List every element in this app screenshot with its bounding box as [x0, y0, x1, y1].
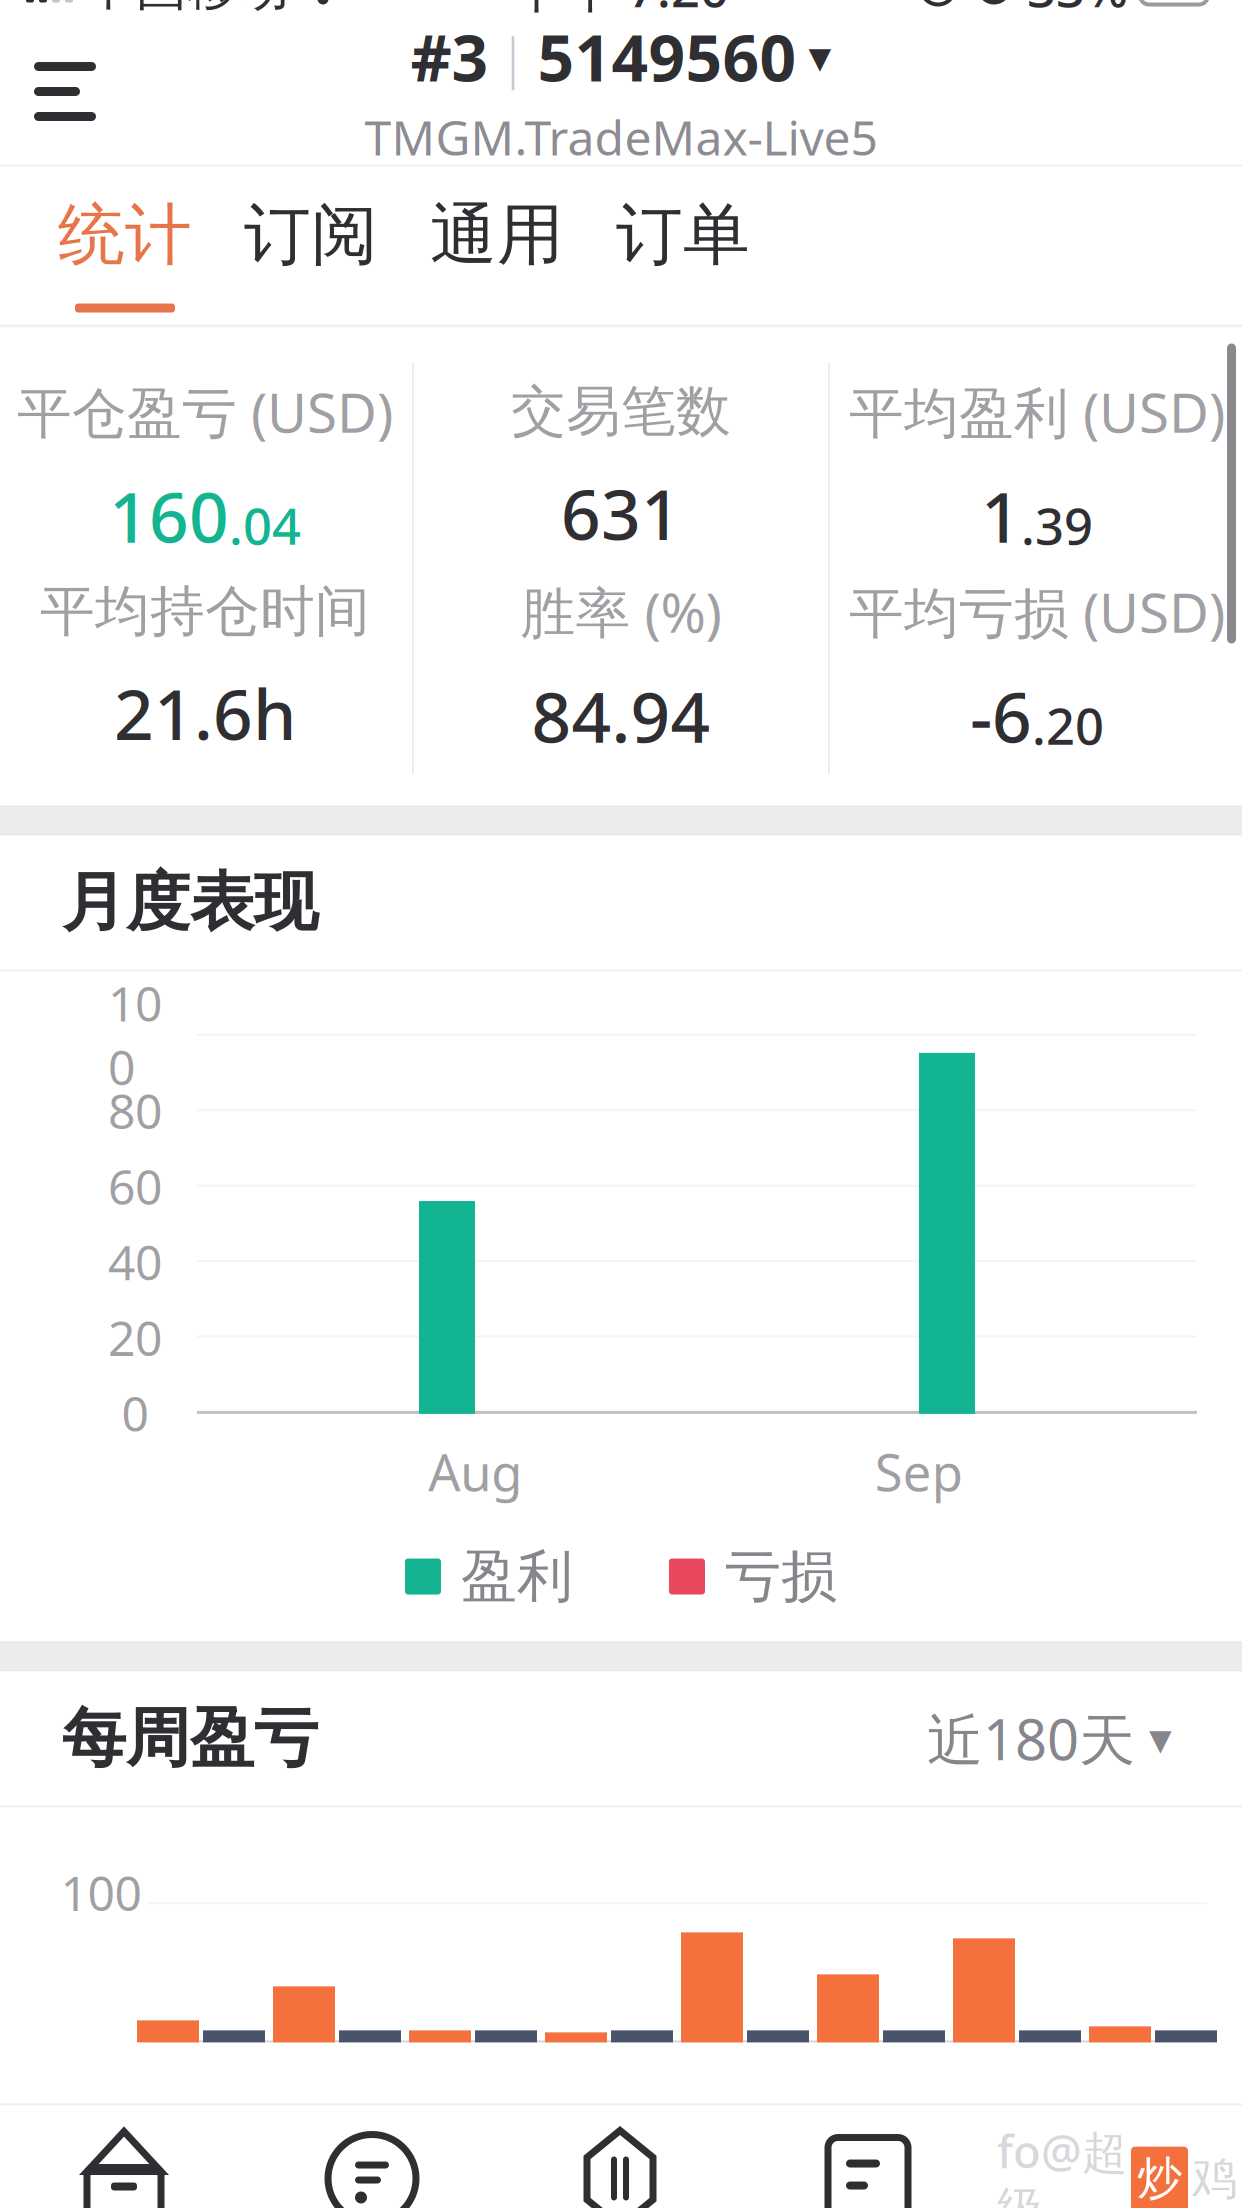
staticText: 631 [561, 467, 681, 559]
staticText: fo@超级 [997, 2120, 1127, 2208]
staticText: 胜率 (%) [520, 575, 721, 648]
staticText: 平均盈利 (USD) [849, 375, 1225, 448]
button[interactable]: 通用 [404, 166, 590, 324]
staticText: #3 [410, 14, 488, 99]
staticText: 下午 7:20 [513, 0, 729, 21]
button[interactable]: 菜单 [0, 34, 130, 149]
staticText: 月度表现 [62, 863, 318, 942]
staticText: 鸡 [1192, 2151, 1237, 2206]
staticText: 交易笔数 [511, 378, 731, 445]
staticText: | [498, 21, 527, 92]
staticText: 统计 [58, 194, 192, 276]
staticText: 炒 [1137, 2151, 1182, 2206]
staticText: Aug [428, 1438, 522, 1505]
staticText: 60 [108, 1154, 162, 1218]
staticText: 100 [60, 1861, 141, 1924]
staticText: 21.6h [114, 667, 296, 759]
button[interactable]: 订阅 [218, 166, 404, 324]
staticText: 订单 [616, 194, 750, 276]
staticText: 平均亏损 (USD) [849, 575, 1225, 648]
staticText: 80 [108, 1079, 162, 1142]
button[interactable]: 订单 [590, 166, 776, 324]
staticText: 33% [1027, 0, 1128, 21]
staticText: 1 [981, 470, 1021, 562]
staticText: 100 [108, 971, 162, 1099]
staticText: 近180天 [927, 1701, 1135, 1776]
staticText: 160 [109, 470, 229, 562]
staticText: 通用 [430, 194, 564, 276]
button[interactable]: 交易 [496, 2105, 744, 2208]
button[interactable]: 首页 [0, 2105, 248, 2208]
staticText: 每周盈亏 [62, 1699, 318, 1778]
staticText: 20 [108, 1305, 162, 1369]
staticText: 平均持仓时间 [40, 578, 370, 645]
staticText: Sep [875, 1438, 963, 1505]
staticText: 40 [108, 1230, 162, 1293]
staticText: 84.94 [531, 670, 710, 762]
staticText: 订阅 [244, 194, 378, 276]
staticText: .20 [1032, 691, 1104, 759]
staticText: TMGM.TradeMax-Live5 [364, 105, 877, 169]
staticText: 中国移动 [85, 0, 289, 19]
button[interactable]: 信号 [248, 2105, 496, 2208]
staticText: 平仓盈亏 (USD) [17, 375, 393, 448]
staticText: -6 [970, 670, 1032, 762]
staticText: .04 [229, 491, 301, 559]
staticText: 5149560 [537, 14, 796, 99]
button[interactable]: 统计 [32, 166, 218, 324]
staticText: .39 [1021, 491, 1093, 559]
staticText: ▾ [1149, 1713, 1172, 1764]
staticText: 盈利 [461, 1542, 573, 1611]
button[interactable]: #3 [344, 6, 897, 177]
staticText: 0 [121, 1381, 148, 1445]
button[interactable]: 近180天 [919, 1687, 1180, 1790]
staticText: 亏损 [725, 1542, 837, 1611]
button[interactable]: 消息 [744, 2105, 992, 2208]
staticText: ▾ [808, 31, 831, 82]
